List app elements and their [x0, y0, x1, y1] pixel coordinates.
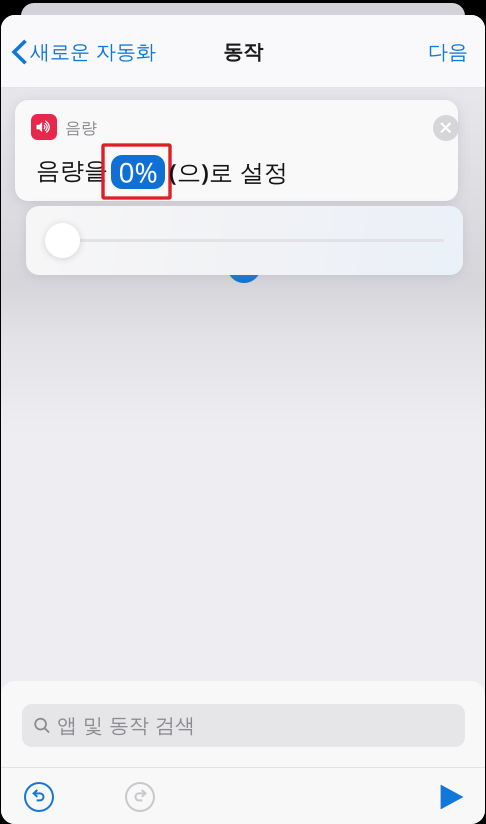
button[interactable]: 앱 및 동작 검색 — [22, 704, 465, 747]
staticText: 새로운 자동화 — [30, 40, 156, 64]
button[interactable]: 동작 제거 — [426, 108, 466, 148]
staticText: (으)로 설정 — [169, 156, 288, 188]
staticText: 앱 및 동작 검색 — [57, 713, 195, 738]
button[interactable]: 재생 — [431, 775, 473, 819]
button[interactable]: 0% — [111, 155, 165, 189]
button[interactable]: 다음 — [411, 29, 485, 75]
staticText: 음량 — [65, 118, 97, 138]
button[interactable]: 실행 취소 — [16, 774, 62, 820]
staticText: 동작 — [223, 40, 263, 64]
staticText: 다음 — [428, 40, 468, 64]
button[interactable]: 다시 실행 — [117, 774, 163, 820]
staticText: 0% — [118, 153, 157, 191]
staticText: 음량을 — [36, 156, 108, 185]
button[interactable]: 새로운 자동화 — [1, 29, 166, 75]
